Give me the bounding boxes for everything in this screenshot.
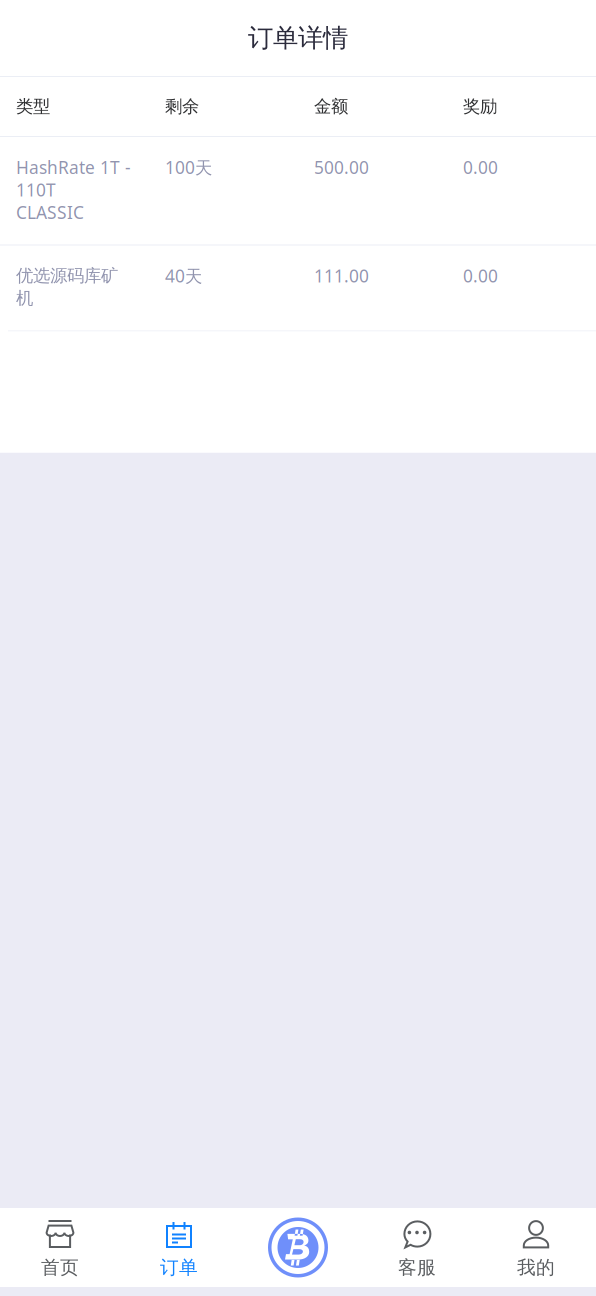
staticText: 100天 [165,156,212,179]
staticText: 剩余 [165,96,199,117]
staticText: 优选源码库矿 [16,265,118,286]
staticText: 首页 [41,1256,79,1279]
staticText: 客服 [398,1256,436,1279]
staticText: 0.00 [463,264,498,287]
button[interactable]: 客服 [357,1208,476,1287]
staticText: 金额 [314,96,348,117]
staticText: 类型 [16,96,50,117]
staticText: 机 [16,288,33,309]
staticText: 500.00 [314,156,369,179]
staticText: 111.00 [314,264,369,287]
staticText: 奖励 [463,96,497,117]
staticText: 我的 [517,1256,555,1279]
staticText: CLASSIC [16,201,84,224]
staticText: HashRate 1T - [16,156,131,179]
button[interactable]: 订单 [119,1208,238,1287]
staticText: 订单 [160,1256,198,1279]
staticText: 110T [16,178,56,201]
button[interactable]: 首页 [0,1208,119,1287]
button[interactable]: Bitcoin [238,1208,357,1287]
staticText: 订单详情 [248,22,348,53]
button[interactable]: 我的 [476,1208,595,1287]
staticText: 40天 [165,264,202,287]
staticText: 0.00 [463,156,498,179]
